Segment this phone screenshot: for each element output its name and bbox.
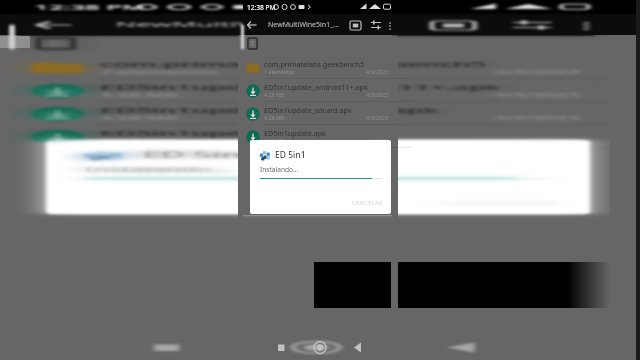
button[interactable]: Back (19, 16, 88, 34)
staticText: ED5in1update_sdcard.apk (100, 105, 440, 115)
staticText: 12:38 PM (34, 3, 146, 12)
staticText: 12:38 PM (34, 3, 146, 12)
staticText: 4/3/2023 (366, 91, 389, 98)
staticText: 4/3/2023 (494, 137, 583, 144)
button[interactable]: More options (559, 19, 606, 31)
staticText: ED5in1update.apk (100, 128, 339, 138)
staticText: Instalando... (85, 165, 235, 174)
staticText: ED5in1update_sdcard.apk (100, 105, 440, 115)
staticText: ED5in1update_android11+.apk (264, 82, 368, 92)
staticText: 4.28 MB (100, 91, 181, 98)
button[interactable]: ED5in1update.apk (19, 125, 594, 148)
staticText: 4/3/2023 (494, 68, 583, 75)
staticText: 4.28 MB (100, 114, 181, 121)
staticText: com.primatelabs.geekbench5 (100, 59, 490, 69)
staticText: NewMultiWine5in1_... (115, 20, 390, 30)
button[interactable]: com.primatelabs.geekbench5 (19, 56, 594, 79)
staticText: ED5in1update_android11+.apk (100, 82, 501, 92)
staticText: ED 5in1 (275, 149, 306, 161)
staticText: ED5in1update.apk (100, 128, 339, 138)
staticText: Instalando... (260, 165, 299, 174)
staticText: com.primatelabs.geekbench5 (100, 59, 490, 69)
button[interactable]: Sort (501, 17, 563, 33)
button[interactable]: Select all (420, 17, 482, 33)
staticText: NewMultiWine5in1_... (115, 20, 390, 30)
button[interactable]: Back (19, 16, 88, 34)
button[interactable]: ED5in1update_sdcard.apk (19, 102, 594, 125)
staticText: NewMultiWine5in1_... (115, 20, 390, 30)
button[interactable]: ED5in1update_android11+.apk (19, 79, 594, 102)
button[interactable]: More options (383, 19, 395, 31)
button[interactable]: Select all (347, 17, 363, 33)
button[interactable]: Select all (420, 17, 482, 33)
button[interactable]: ED5in1update_android11+.apk (19, 79, 594, 102)
button[interactable]: com.primatelabs.geekbench5 (19, 56, 594, 79)
staticText: 12:38 PM (34, 3, 146, 12)
staticText: 4.28 MB (100, 137, 181, 144)
button[interactable]: Sort (501, 17, 563, 33)
staticText: 4/3/2023 (494, 137, 583, 144)
staticText: 4/3/2023 (366, 137, 389, 144)
button[interactable]: Select all (420, 17, 482, 33)
button[interactable]: ED5in1update_sdcard.apk (243, 102, 392, 125)
staticText: 4.28 MB (100, 137, 181, 144)
button[interactable]: Back (243, 16, 261, 34)
staticText: CANCELAR (352, 199, 383, 207)
staticText: com.primatelabs.geekbench5 (264, 59, 365, 69)
staticText: 4.28 MB (264, 137, 285, 144)
staticText: 4.28 MB (264, 91, 285, 98)
staticText: 4/3/2023 (366, 68, 389, 75)
button[interactable]: Sort (501, 17, 563, 33)
button[interactable]: com.primatelabs.geekbench5 (243, 56, 392, 79)
button[interactable]: More options (559, 19, 606, 31)
staticText: 4/3/2023 (494, 91, 583, 98)
staticText: 7 elementos (100, 68, 220, 75)
staticText: 7 elementos (264, 68, 295, 75)
staticText: 4/3/2023 (494, 114, 583, 121)
staticText: 4/3/2023 (494, 68, 583, 75)
button[interactable]: More options (559, 19, 606, 31)
staticText: 4/3/2023 (494, 114, 583, 121)
staticText: ED 5in1 (142, 149, 262, 161)
staticText: ED5in1update_android11+.apk (100, 82, 501, 92)
button[interactable]: CANCELAR (352, 199, 383, 207)
staticText: 4/3/2023 (366, 114, 389, 121)
button[interactable]: Back (19, 16, 88, 34)
staticText: ED5in1update.apk (264, 128, 326, 138)
button[interactable]: Sort (368, 17, 384, 33)
staticText: ED 5in1 (142, 149, 262, 161)
button[interactable]: ED5in1update_sdcard.apk (19, 102, 594, 125)
staticText: 12:38 PM (247, 3, 276, 12)
staticText: ED5in1update_sdcard.apk (264, 105, 352, 115)
button[interactable]: ED5in1update_android11+.apk (243, 79, 392, 102)
staticText: 4.28 MB (100, 114, 181, 121)
staticText: 4.28 MB (100, 91, 181, 98)
staticText: NewMultiWine5in1_... (268, 20, 339, 30)
staticText: Instalando... (85, 165, 235, 174)
staticText: 7 elementos (100, 68, 220, 75)
button[interactable]: ED5in1update.apk (243, 125, 392, 148)
staticText: 4/3/2023 (494, 91, 583, 98)
button[interactable]: ED5in1update.apk (19, 125, 594, 148)
staticText: 4.28 MB (264, 114, 285, 121)
